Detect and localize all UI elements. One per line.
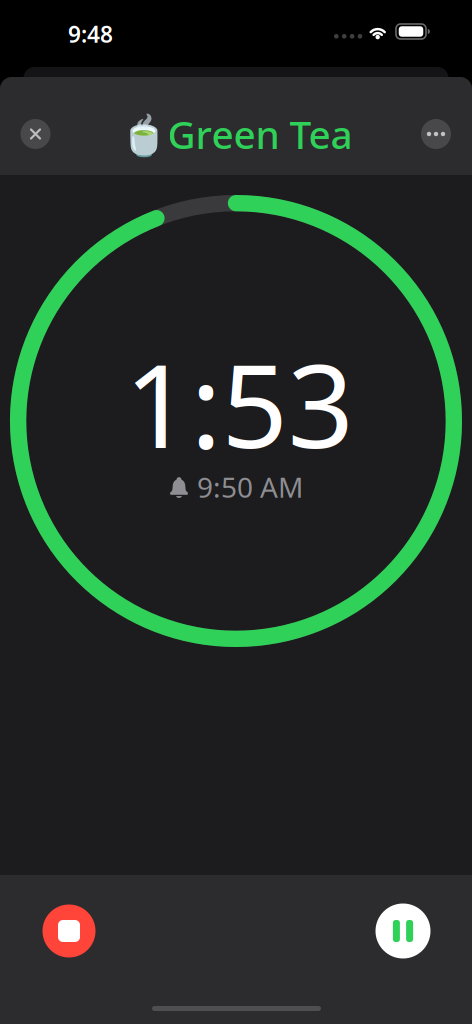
staticText: 9:48	[68, 19, 113, 49]
staticText: 1:53	[124, 326, 353, 480]
staticText: 9:50 AM	[197, 468, 303, 506]
button[interactable]: More	[414, 112, 458, 156]
button[interactable]: Pause	[370, 898, 436, 964]
button[interactable]: Close	[13, 112, 57, 156]
button[interactable]: Stop	[36, 898, 102, 964]
staticText: 🍵Green Tea	[119, 108, 352, 160]
